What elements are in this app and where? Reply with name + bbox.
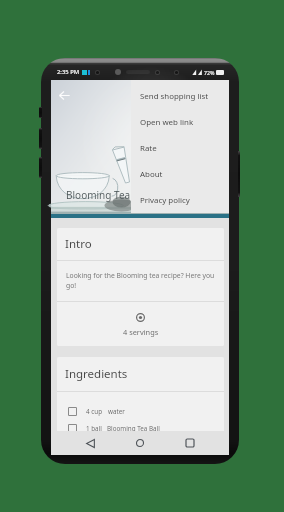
staticText: 4 cup bbox=[86, 407, 103, 416]
button[interactable]: Open web link bbox=[131, 109, 229, 135]
button[interactable]: 4 cup bbox=[57, 403, 224, 420]
button[interactable]: Back bbox=[79, 432, 101, 454]
button[interactable]: Back bbox=[54, 85, 75, 106]
staticText: Privacy policy bbox=[140, 195, 190, 206]
staticText: Open web link bbox=[140, 117, 194, 128]
staticText: About bbox=[140, 169, 163, 180]
button[interactable]: Recent apps bbox=[179, 432, 201, 454]
staticText: Looking for the Blooming tea recipe? Her… bbox=[66, 271, 221, 290]
button[interactable]: 1 ball bbox=[57, 420, 224, 437]
staticText: Blooming Tea bbox=[66, 188, 131, 202]
button[interactable]: Rate bbox=[131, 135, 229, 161]
staticText: water bbox=[108, 407, 125, 416]
staticText: Blooming Tea Ball bbox=[107, 424, 160, 433]
staticText: 72% bbox=[204, 69, 215, 76]
staticText: Intro bbox=[65, 236, 92, 252]
button[interactable]: Home bbox=[129, 432, 151, 454]
staticText: 1 ball bbox=[86, 424, 102, 433]
staticText: Ingredients bbox=[65, 366, 128, 382]
staticText: 4 servings bbox=[123, 327, 159, 337]
staticText: Rate bbox=[140, 143, 157, 154]
staticText: 2:35 PM bbox=[57, 68, 80, 76]
button[interactable]: Send shopping list bbox=[131, 83, 229, 109]
button[interactable]: Privacy policy bbox=[131, 187, 229, 213]
staticText: Send shopping list bbox=[140, 91, 209, 102]
button[interactable]: About bbox=[131, 161, 229, 187]
